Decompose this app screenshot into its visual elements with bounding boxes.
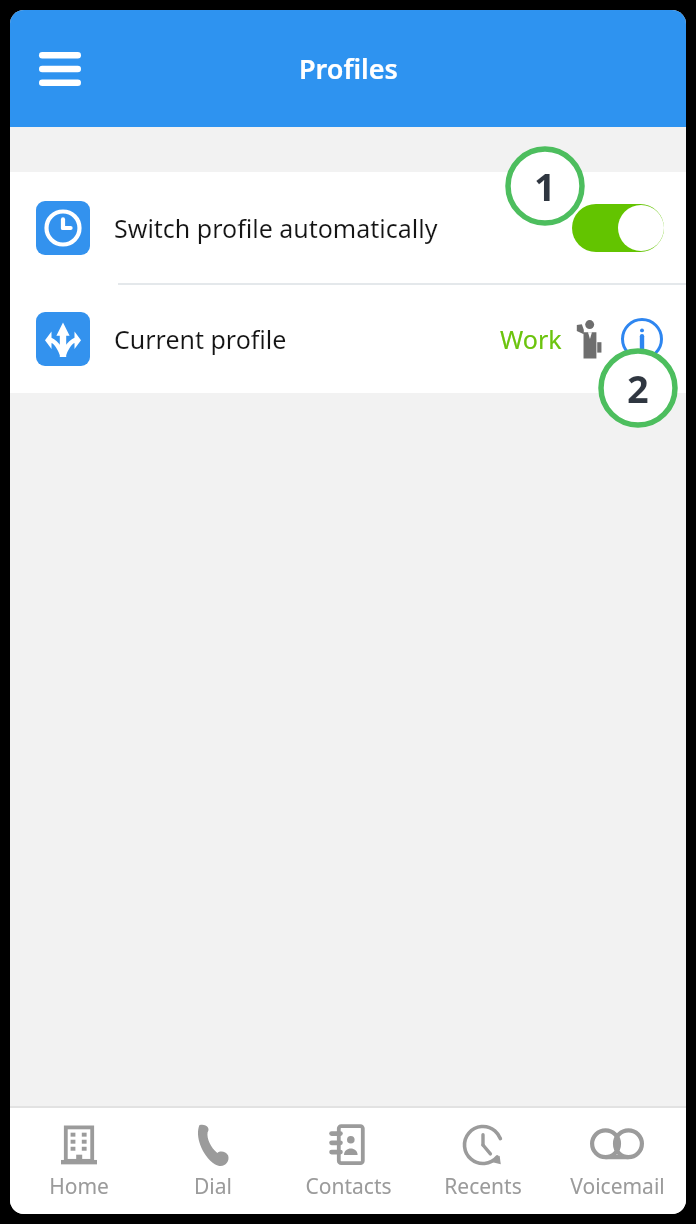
button[interactable]: Dial: [147, 1108, 279, 1214]
button[interactable]: Switch profile automatically: [572, 204, 664, 252]
staticText: Current profile: [114, 322, 287, 356]
button[interactable]: Home: [13, 1108, 145, 1214]
staticText: Home: [49, 1172, 109, 1201]
staticText: Profiles: [299, 50, 398, 87]
button[interactable]: Voicemail: [551, 1108, 683, 1214]
staticText: Contacts: [305, 1172, 392, 1201]
button[interactable]: Current profile: [10, 285, 686, 393]
button[interactable]: Profile info: [618, 315, 666, 363]
staticText: Switch profile automatically: [114, 211, 438, 245]
button[interactable]: Contacts: [282, 1108, 414, 1214]
button[interactable]: Recents: [417, 1108, 549, 1214]
staticText: 2: [627, 362, 649, 414]
staticText: Work: [500, 322, 562, 356]
button[interactable]: Switch profile automatically: [10, 172, 686, 283]
staticText: Voicemail: [570, 1172, 665, 1201]
staticText: Recents: [444, 1172, 522, 1201]
staticText: Dial: [194, 1172, 232, 1201]
staticText: 1: [534, 160, 556, 212]
button[interactable]: Open navigation menu: [30, 39, 90, 99]
